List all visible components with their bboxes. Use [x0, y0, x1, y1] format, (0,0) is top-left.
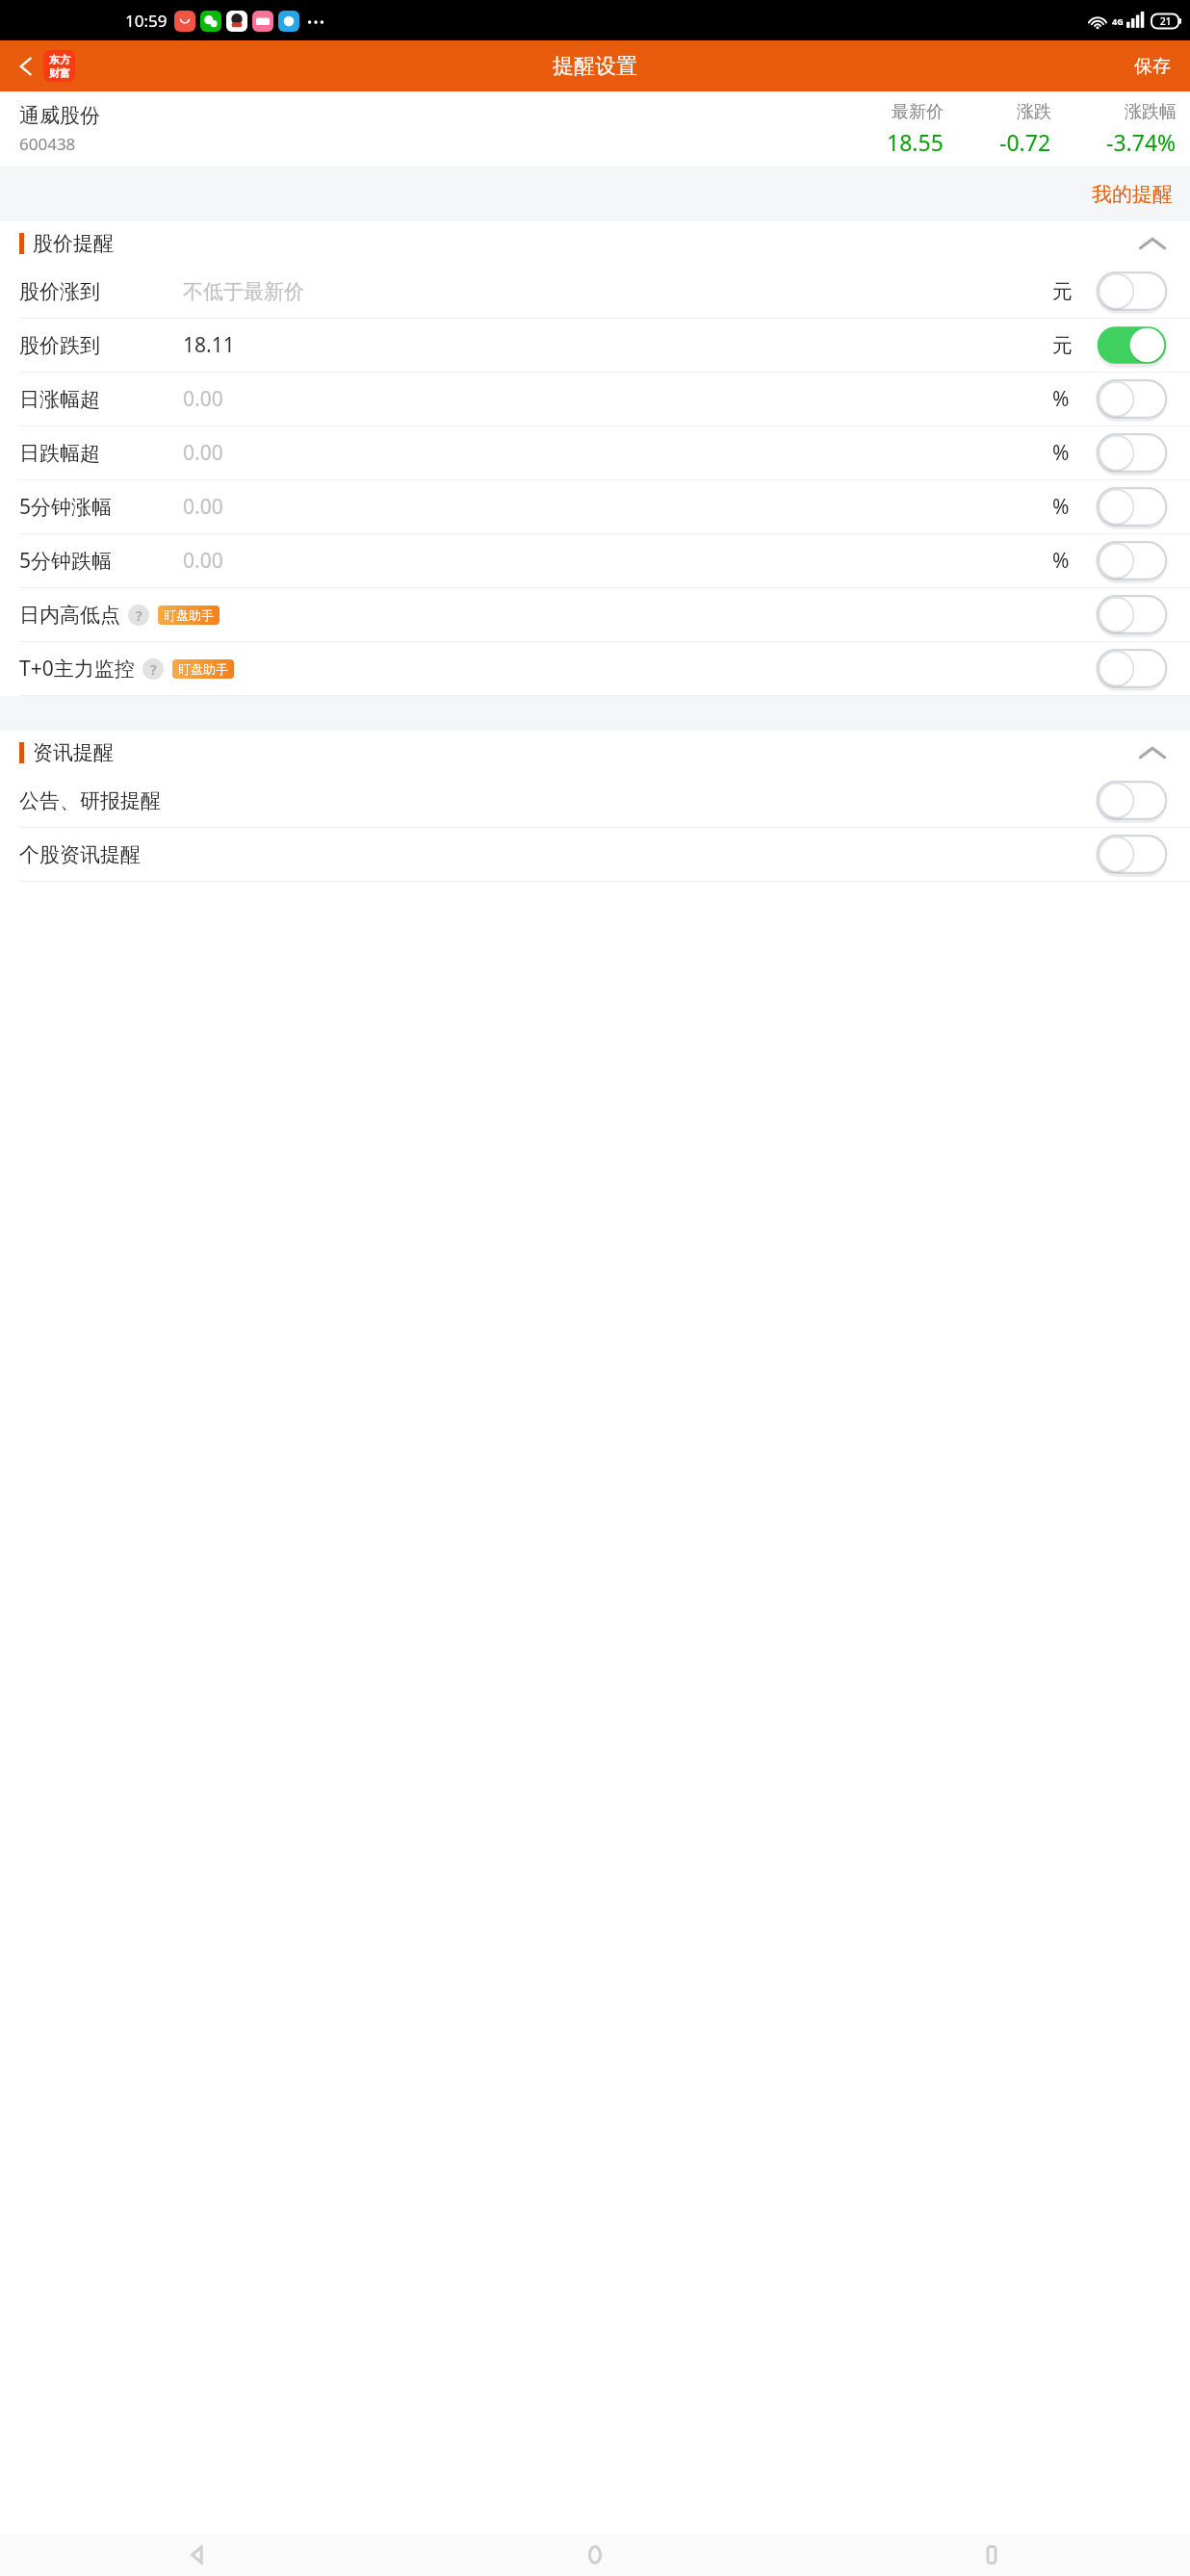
staticText: 保存: [1134, 55, 1171, 78]
staticText: 日跌幅超: [19, 441, 183, 466]
staticText: 0.00: [183, 439, 1052, 467]
button[interactable]: Help: [128, 605, 149, 626]
staticText: 元: [1052, 333, 1089, 358]
staticText: 0.00: [183, 547, 1052, 575]
staticText: 东方: [49, 53, 70, 66]
staticText: %: [1052, 547, 1089, 575]
staticText: 资讯提醒: [33, 740, 114, 765]
button[interactable]: Recents: [793, 2533, 1190, 2576]
staticText: 涨跌幅: [1125, 101, 1177, 123]
staticText: 股价涨到: [19, 279, 183, 304]
button[interactable]: 日跌幅超: [0, 426, 1190, 479]
staticText: %: [1052, 385, 1089, 413]
staticText: 涨跌: [1017, 101, 1051, 123]
button[interactable]: Toggle off: [1095, 833, 1169, 876]
button[interactable]: 股价涨到: [0, 265, 1190, 318]
button[interactable]: 资讯提醒: [0, 731, 1190, 774]
staticText: ?: [150, 660, 157, 679]
staticText: 最新价: [892, 101, 944, 123]
button[interactable]: 我的提醒: [1074, 174, 1190, 215]
staticText: 我的提醒: [1092, 182, 1173, 207]
button[interactable]: Toggle off: [1095, 270, 1169, 313]
staticText: 5分钟涨幅: [19, 493, 183, 521]
staticText: 个股资讯提醒: [19, 842, 183, 867]
staticText: 盯盘助手: [164, 607, 214, 623]
button[interactable]: 通威股份: [0, 91, 1190, 167]
staticText: 元: [1052, 279, 1089, 304]
button[interactable]: 股价跌到: [0, 319, 1190, 372]
button[interactable]: Back: [6, 44, 83, 88]
staticText: 提醒设置: [553, 53, 637, 80]
staticText: 21: [1160, 14, 1172, 28]
staticText: 0.00: [183, 385, 1052, 413]
button[interactable]: 保存: [1115, 45, 1190, 88]
staticText: 10:59: [125, 10, 168, 32]
staticText: 盯盘助手: [178, 661, 228, 677]
staticText: 股价提醒: [33, 231, 114, 256]
button[interactable]: Toggle off: [1095, 539, 1169, 582]
staticText: 日内高低点: [19, 603, 120, 628]
staticText: 日涨幅超: [19, 387, 183, 412]
staticText: 5分钟跌幅: [19, 547, 183, 575]
button[interactable]: Toggle on: [1095, 323, 1169, 367]
staticText: 4G: [1112, 15, 1124, 27]
staticText: 股价跌到: [19, 333, 183, 358]
button[interactable]: 日涨幅超: [0, 373, 1190, 425]
button[interactable]: 5分钟跌幅: [0, 534, 1190, 587]
button[interactable]: 日内高低点: [0, 588, 1190, 641]
staticText: %: [1052, 493, 1089, 521]
staticText: 18.11: [183, 331, 1052, 359]
staticText: -3.74%: [1106, 127, 1177, 157]
staticText: T+0主力监控: [19, 655, 135, 683]
button[interactable]: Back: [0, 2533, 397, 2576]
staticText: -0.72: [999, 127, 1051, 157]
button[interactable]: T+0主力监控: [0, 642, 1190, 695]
staticText: 0.00: [183, 493, 1052, 521]
button[interactable]: Toggle off: [1095, 779, 1169, 822]
button[interactable]: Help: [142, 658, 164, 680]
staticText: 18.55: [887, 127, 944, 157]
button[interactable]: 5分钟涨幅: [0, 480, 1190, 533]
button[interactable]: Toggle off: [1095, 431, 1169, 475]
button[interactable]: 股价提醒: [0, 221, 1190, 265]
staticText: 公告、研报提醒: [19, 788, 183, 813]
button[interactable]: Toggle off: [1095, 647, 1169, 690]
button[interactable]: Home: [397, 2533, 793, 2576]
staticText: 不低于最新价: [183, 279, 1052, 304]
staticText: 600438: [19, 133, 76, 155]
button[interactable]: 公告、研报提醒: [0, 774, 1190, 827]
button[interactable]: 个股资讯提醒: [0, 828, 1190, 881]
button[interactable]: Toggle off: [1095, 377, 1169, 421]
staticText: 财富: [49, 66, 70, 80]
staticText: ?: [136, 606, 142, 625]
button[interactable]: Toggle off: [1095, 485, 1169, 528]
staticText: 通威股份: [19, 103, 100, 128]
button[interactable]: Toggle off: [1095, 593, 1169, 636]
staticText: %: [1052, 439, 1089, 467]
